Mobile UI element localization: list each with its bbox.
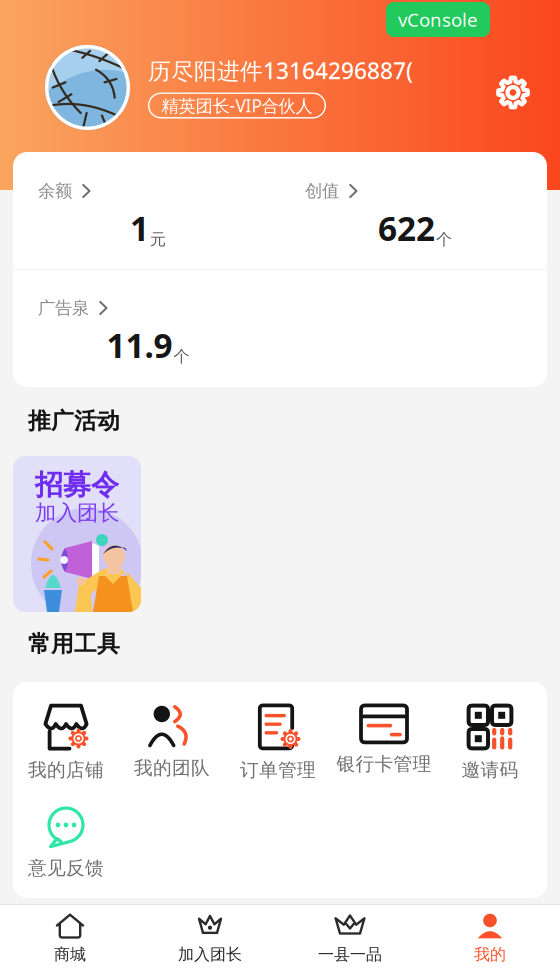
staticText: 银行卡管理 [336, 752, 431, 775]
staticText: 创值 [305, 180, 339, 202]
button[interactable]: 订单管理 [225, 682, 331, 785]
staticText: 1 [130, 206, 149, 250]
button[interactable]: 我的店铺 [13, 682, 119, 785]
staticText: 622 [378, 206, 435, 250]
button[interactable]: 加入团长 [140, 905, 280, 972]
button[interactable]: 我的 [420, 905, 560, 972]
button[interactable]: 精英团长-VIP合伙人 [148, 92, 326, 118]
staticText: 历尽阳进件13164296887( [148, 55, 413, 85]
button[interactable]: 邀请码 [437, 682, 543, 785]
staticText: 我的 [474, 945, 506, 964]
button[interactable]: 常用工具 [28, 631, 228, 657]
button[interactable]: 招募令 [13, 456, 141, 612]
staticText: 我的团队 [134, 756, 210, 779]
staticText: 元 [150, 229, 166, 249]
staticText: 推广活动 [28, 407, 120, 435]
button[interactable]: 商城 [0, 905, 140, 972]
staticText: 个 [173, 346, 189, 366]
button[interactable]: 意见反馈 [13, 785, 119, 888]
staticText: 11.9 [106, 323, 172, 367]
staticText: 一县一品 [318, 945, 382, 964]
staticText: 我的店铺 [28, 758, 104, 781]
staticText: 余额 [38, 180, 72, 202]
staticText: 订单管理 [240, 758, 316, 781]
button[interactable]: 广告泉 [13, 297, 280, 319]
staticText: 广告泉 [38, 297, 89, 319]
button[interactable]: 推广活动 [28, 408, 228, 434]
staticText: 加入团长 [178, 945, 242, 964]
button[interactable]: 一县一品 [280, 905, 420, 972]
button[interactable]: vConsole [386, 2, 490, 37]
button[interactable]: 余额 [13, 180, 280, 202]
staticText: 个 [436, 229, 452, 249]
staticText: 常用工具 [28, 630, 120, 658]
button[interactable]: 我的团队 [119, 682, 225, 785]
staticText: 精英团长-VIP合伙人 [161, 94, 312, 117]
staticText: vConsole [398, 7, 478, 32]
staticText: 邀请码 [461, 758, 518, 781]
button[interactable]: 创值 [280, 180, 547, 202]
staticText: 意见反馈 [28, 856, 104, 879]
button[interactable]: 银行卡管理 [331, 682, 437, 785]
button[interactable]: Settings [485, 54, 541, 120]
staticText: 商城 [54, 945, 86, 964]
staticText: 招募令 [35, 468, 119, 502]
staticText: 加入团长 [35, 500, 119, 526]
